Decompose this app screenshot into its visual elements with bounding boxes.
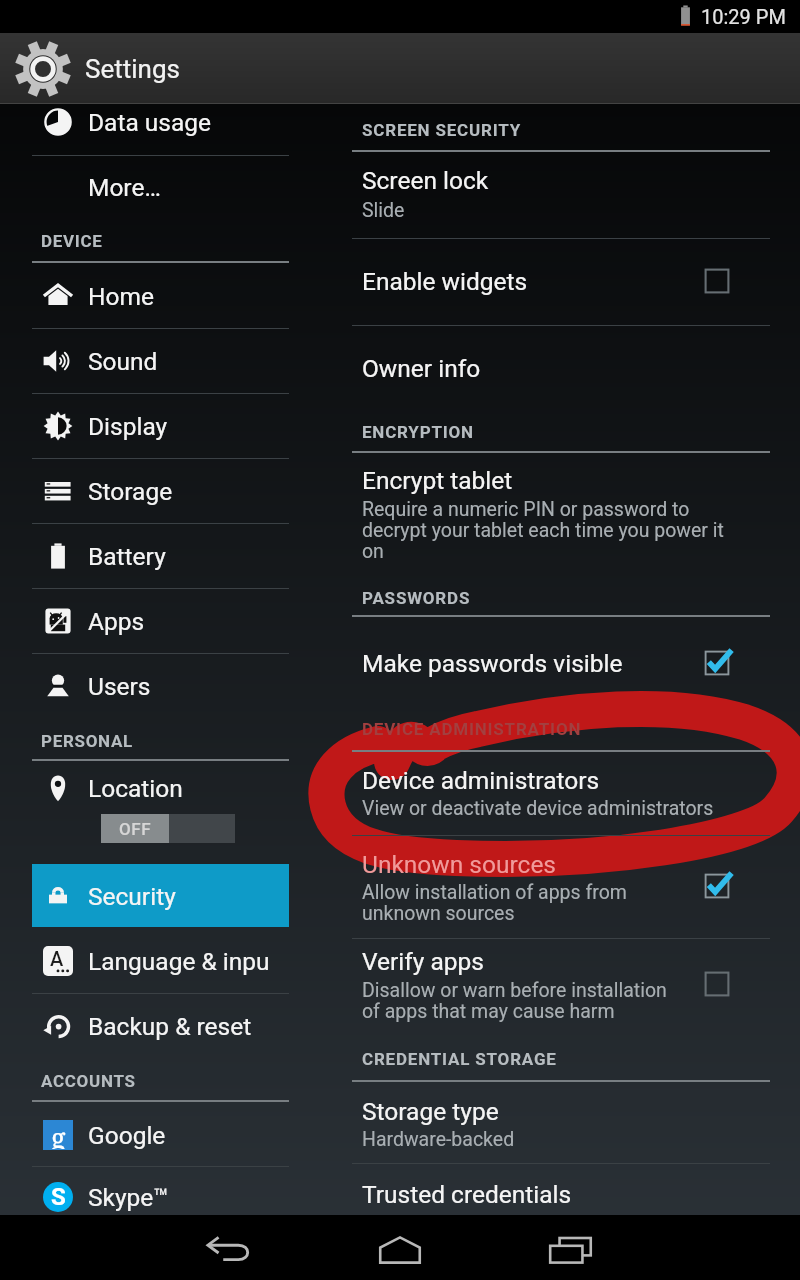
button[interactable] xyxy=(352,632,780,696)
staticText: g xyxy=(51,1119,66,1149)
staticText: Google xyxy=(88,1121,268,1150)
staticText: View or deactivate device administrators xyxy=(362,797,714,820)
staticText: Settings xyxy=(85,54,180,84)
staticText: Location xyxy=(88,774,268,803)
button[interactable] xyxy=(0,459,320,523)
staticText: unknown sources xyxy=(362,902,515,925)
staticText: Sound xyxy=(88,347,268,376)
staticText: Users xyxy=(88,672,268,701)
button[interactable] xyxy=(0,524,320,588)
staticText: Trusted credentials xyxy=(362,1180,572,1209)
staticText: Apps xyxy=(88,607,268,636)
button[interactable]: Home xyxy=(360,1215,440,1280)
staticText: PASSWORDS xyxy=(362,588,471,608)
staticText: Home xyxy=(88,282,268,311)
button[interactable] xyxy=(352,158,780,234)
button[interactable] xyxy=(0,654,320,718)
button[interactable] xyxy=(0,756,320,820)
staticText: Allow installation of apps from xyxy=(362,881,627,904)
staticText: of apps that may cause harm xyxy=(362,1000,615,1023)
button[interactable]: Checked xyxy=(698,867,736,905)
staticText: decrypt your tablet each time you power … xyxy=(362,519,724,542)
button[interactable] xyxy=(0,1165,320,1229)
staticText: Require a numeric PIN or password to xyxy=(362,498,690,521)
button[interactable] xyxy=(352,944,780,1036)
staticText: Storage xyxy=(88,477,268,506)
button[interactable] xyxy=(352,248,780,320)
staticText: Unknown sources xyxy=(362,850,557,879)
staticText: Data usage xyxy=(88,108,268,137)
staticText: Owner info xyxy=(362,354,481,383)
staticText: CREDENTIAL STORAGE xyxy=(362,1049,557,1069)
button[interactable] xyxy=(352,1168,780,1215)
button[interactable] xyxy=(352,460,780,570)
staticText: Hardware-backed xyxy=(362,1128,515,1151)
button[interactable]: Recent apps xyxy=(531,1215,611,1280)
button[interactable] xyxy=(352,340,780,396)
button[interactable] xyxy=(0,864,320,928)
button[interactable] xyxy=(352,1090,780,1162)
staticText: Make passwords visible xyxy=(362,649,623,678)
button[interactable] xyxy=(0,994,320,1058)
button[interactable]: Checked xyxy=(698,644,736,682)
button[interactable] xyxy=(0,155,320,219)
staticText: Enable widgets xyxy=(362,267,528,296)
staticText: ENCRYPTION xyxy=(362,422,474,442)
staticText: Battery xyxy=(88,542,268,571)
staticText: DEVICE ADMINISTRATION xyxy=(362,719,582,739)
staticText: 10:29 PM xyxy=(701,5,786,28)
staticText: Disallow or warn before installation xyxy=(362,979,667,1002)
staticText: SCREEN SECURITY xyxy=(362,120,521,140)
button[interactable]: Unchecked xyxy=(698,965,736,1003)
button[interactable] xyxy=(0,329,320,393)
button[interactable] xyxy=(352,842,780,936)
button[interactable]: Unchecked xyxy=(698,262,736,300)
staticText: OFF xyxy=(119,819,152,839)
staticText: More… xyxy=(88,173,268,202)
button[interactable] xyxy=(352,758,780,834)
button[interactable] xyxy=(0,264,320,328)
button[interactable] xyxy=(0,929,320,993)
staticText: Screen lock xyxy=(362,166,489,195)
staticText: Slide xyxy=(362,199,405,222)
staticText: Backup & reset xyxy=(88,1012,268,1041)
staticText: Language & input xyxy=(88,947,268,976)
staticText: PERSONAL xyxy=(41,731,133,751)
button[interactable]: OFF xyxy=(101,814,235,843)
staticText: Storage type xyxy=(362,1097,499,1126)
button[interactable] xyxy=(0,589,320,653)
staticText: S xyxy=(51,1183,66,1211)
staticText: Security xyxy=(88,882,268,911)
staticText: A xyxy=(50,947,64,970)
staticText: Verify apps xyxy=(362,947,484,976)
staticText: ACCOUNTS xyxy=(41,1071,136,1091)
button[interactable] xyxy=(0,90,320,154)
staticText: Display xyxy=(88,412,268,441)
button[interactable] xyxy=(0,394,320,458)
button[interactable]: Back xyxy=(190,1215,270,1280)
staticText: Skype™ xyxy=(88,1183,268,1212)
staticText: on xyxy=(362,540,384,563)
staticText: Encrypt tablet xyxy=(362,466,513,495)
staticText: Device administrators xyxy=(362,766,600,795)
button[interactable] xyxy=(0,1103,320,1167)
staticText: DEVICE xyxy=(41,231,103,251)
